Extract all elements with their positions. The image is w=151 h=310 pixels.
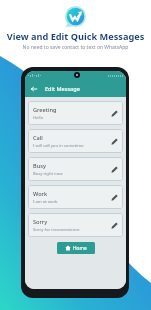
button[interactable]: Call — [28, 129, 123, 153]
staticText: Work — [33, 190, 48, 198]
button[interactable]: Sorry — [28, 213, 123, 237]
other: Edit — [111, 138, 118, 145]
staticText: Sorry for inconvenience — [33, 227, 80, 233]
staticText: Home — [73, 245, 87, 252]
other: Edit — [111, 110, 118, 117]
staticText: Edit Message — [45, 85, 80, 93]
button[interactable]: Busy — [28, 157, 123, 181]
button[interactable]: Home — [57, 242, 95, 254]
button[interactable]: Back — [29, 84, 39, 94]
staticText: Busy — [33, 162, 46, 170]
staticText: Call — [33, 134, 43, 142]
staticText: No need to save contact to text on Whats… — [0, 44, 151, 51]
button[interactable]: Work — [28, 185, 123, 209]
other: Edit — [111, 166, 118, 173]
staticText: I will call you in sometime — [33, 143, 84, 149]
staticText: Hello — [33, 115, 44, 121]
staticText: Greeting — [33, 106, 57, 114]
other: Edit — [111, 222, 118, 229]
other: Edit — [111, 194, 118, 201]
staticText: Sorry — [33, 218, 48, 226]
staticText: View and Edit Quick Messages — [0, 30, 151, 43]
staticText: I am at work — [33, 199, 58, 205]
staticText: Busy right now — [33, 171, 63, 177]
button[interactable]: Greeting — [28, 101, 123, 125]
